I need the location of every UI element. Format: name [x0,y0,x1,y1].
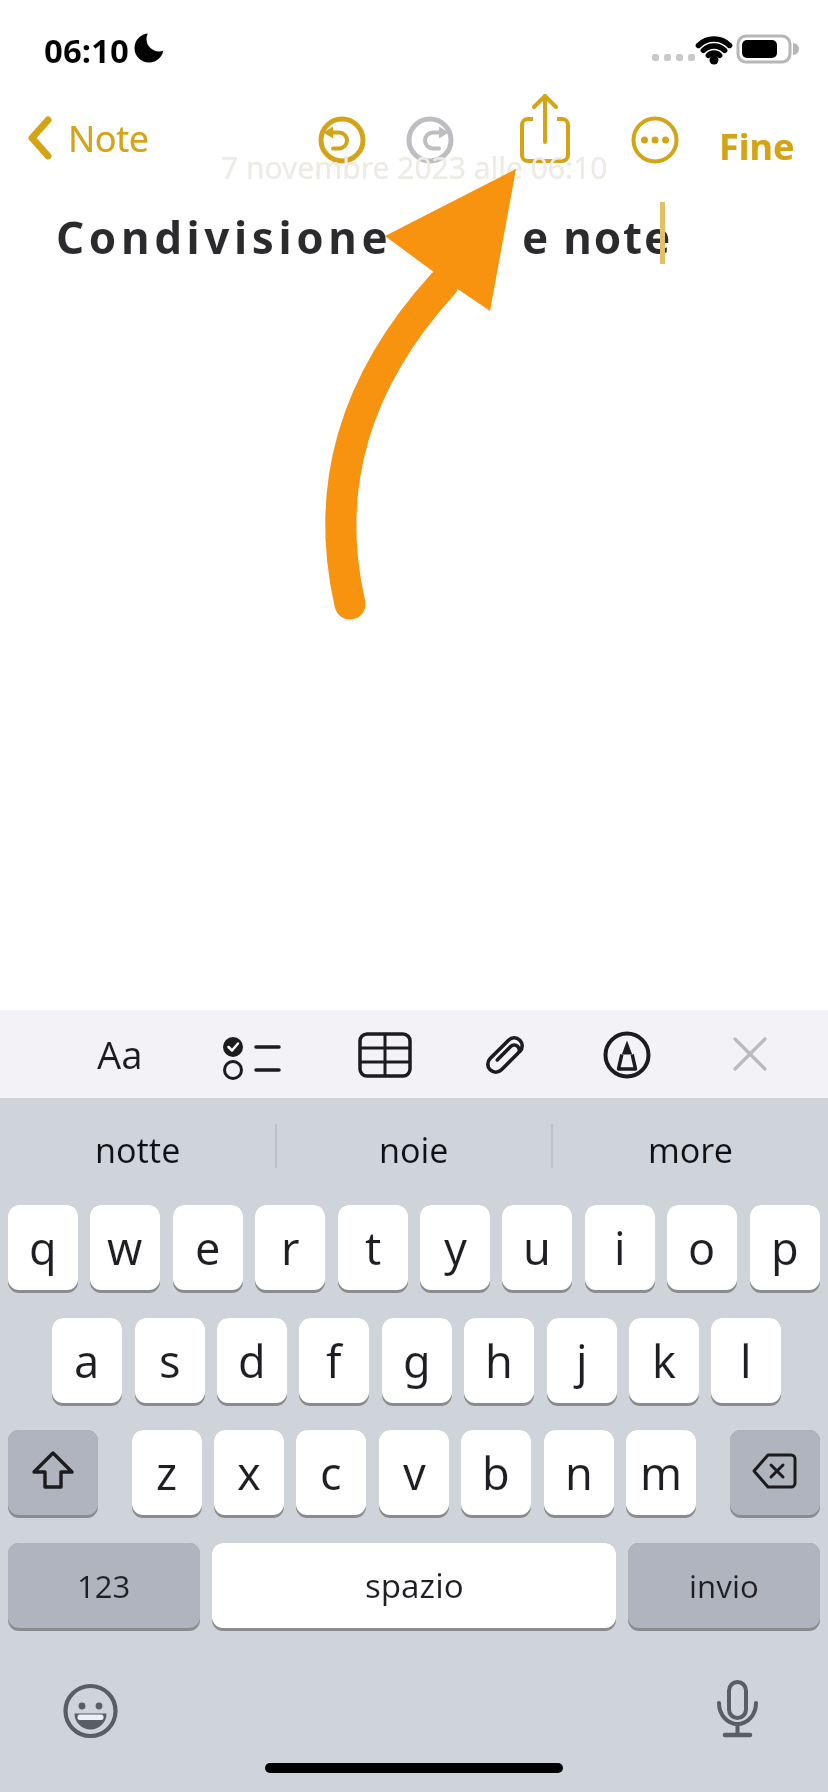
staticText: w [107,1217,143,1278]
staticText: f [326,1330,342,1391]
button[interactable]: k [629,1318,699,1406]
staticText: s [159,1330,181,1391]
staticText: noie [379,1127,449,1173]
staticText: spazio [365,1563,464,1608]
button[interactable] [631,116,679,164]
button[interactable]: s [135,1318,205,1406]
button[interactable]: w [90,1205,160,1293]
staticText: h [485,1330,513,1391]
staticText: v [403,1442,426,1503]
staticText: n [565,1442,593,1503]
button[interactable] [216,1036,282,1076]
button[interactable]: Fine [719,122,795,171]
staticText: m [640,1442,683,1503]
button[interactable]: u [502,1205,572,1293]
button[interactable]: noie [276,1106,552,1194]
staticText: l [740,1330,752,1391]
button[interactable] [8,1430,98,1518]
staticText: a [74,1330,100,1391]
button[interactable] [358,1032,412,1078]
button[interactable]: a [52,1318,122,1406]
button[interactable] [713,1680,763,1740]
staticText: Condivisione [56,207,393,267]
staticText: q [29,1217,57,1278]
staticText: e [195,1217,221,1278]
button[interactable] [406,116,454,164]
button[interactable] [730,1430,820,1518]
button[interactable] [62,1682,120,1740]
button[interactable] [517,94,573,164]
button[interactable]: t [338,1205,408,1293]
button[interactable]: i [585,1205,655,1293]
staticText: 06:10 [44,28,129,73]
button[interactable] [478,1030,532,1080]
staticText: k [652,1330,677,1391]
button[interactable]: m [626,1430,696,1518]
button[interactable]: 123 [8,1543,200,1631]
staticText: d [238,1330,266,1391]
button[interactable] [603,1031,651,1079]
button[interactable] [728,1039,772,1069]
staticText: j [576,1330,588,1391]
button[interactable]: c [296,1430,366,1518]
button[interactable]: q [8,1205,78,1293]
staticText: g [403,1330,431,1391]
button[interactable]: j [547,1318,617,1406]
staticText: c [320,1442,342,1503]
button[interactable]: f [299,1318,369,1406]
staticText: invio [689,1565,759,1607]
button[interactable]: r [255,1205,325,1293]
staticText: e note [522,207,672,267]
staticText: i [614,1217,626,1278]
button[interactable]: d [217,1318,287,1406]
staticText: Note [68,114,149,163]
button[interactable]: o [667,1205,737,1293]
button[interactable]: more [552,1106,828,1194]
button[interactable]: x [214,1430,284,1518]
staticText: u [523,1217,551,1278]
button[interactable]: Aa [88,1024,152,1084]
button[interactable] [318,116,366,164]
button[interactable]: n [544,1430,614,1518]
button[interactable]: l [711,1318,781,1406]
staticText: r [281,1217,300,1278]
button[interactable]: invio [628,1543,820,1631]
staticText: notte [95,1127,181,1173]
button[interactable]: spazio [212,1543,616,1631]
staticText: y [444,1217,467,1278]
staticText: b [482,1442,510,1503]
staticText: p [771,1217,799,1278]
button[interactable]: notte [0,1106,276,1194]
staticText: Aa [97,1028,143,1080]
button[interactable]: p [750,1205,820,1293]
staticText: z [156,1442,178,1503]
staticText: t [365,1217,382,1278]
button[interactable]: e [173,1205,243,1293]
button[interactable]: y [420,1205,490,1293]
button[interactable]: b [461,1430,531,1518]
staticText: 123 [77,1565,131,1607]
button[interactable]: h [464,1318,534,1406]
staticText: more [648,1127,733,1173]
button[interactable]: Note [24,112,149,164]
button[interactable]: z [132,1430,202,1518]
staticText: 7 novembre 2023 alle 06:10 [221,147,608,188]
button[interactable]: g [382,1318,452,1406]
staticText: o [688,1217,716,1278]
button[interactable]: v [379,1430,449,1518]
staticText: x [237,1442,261,1503]
